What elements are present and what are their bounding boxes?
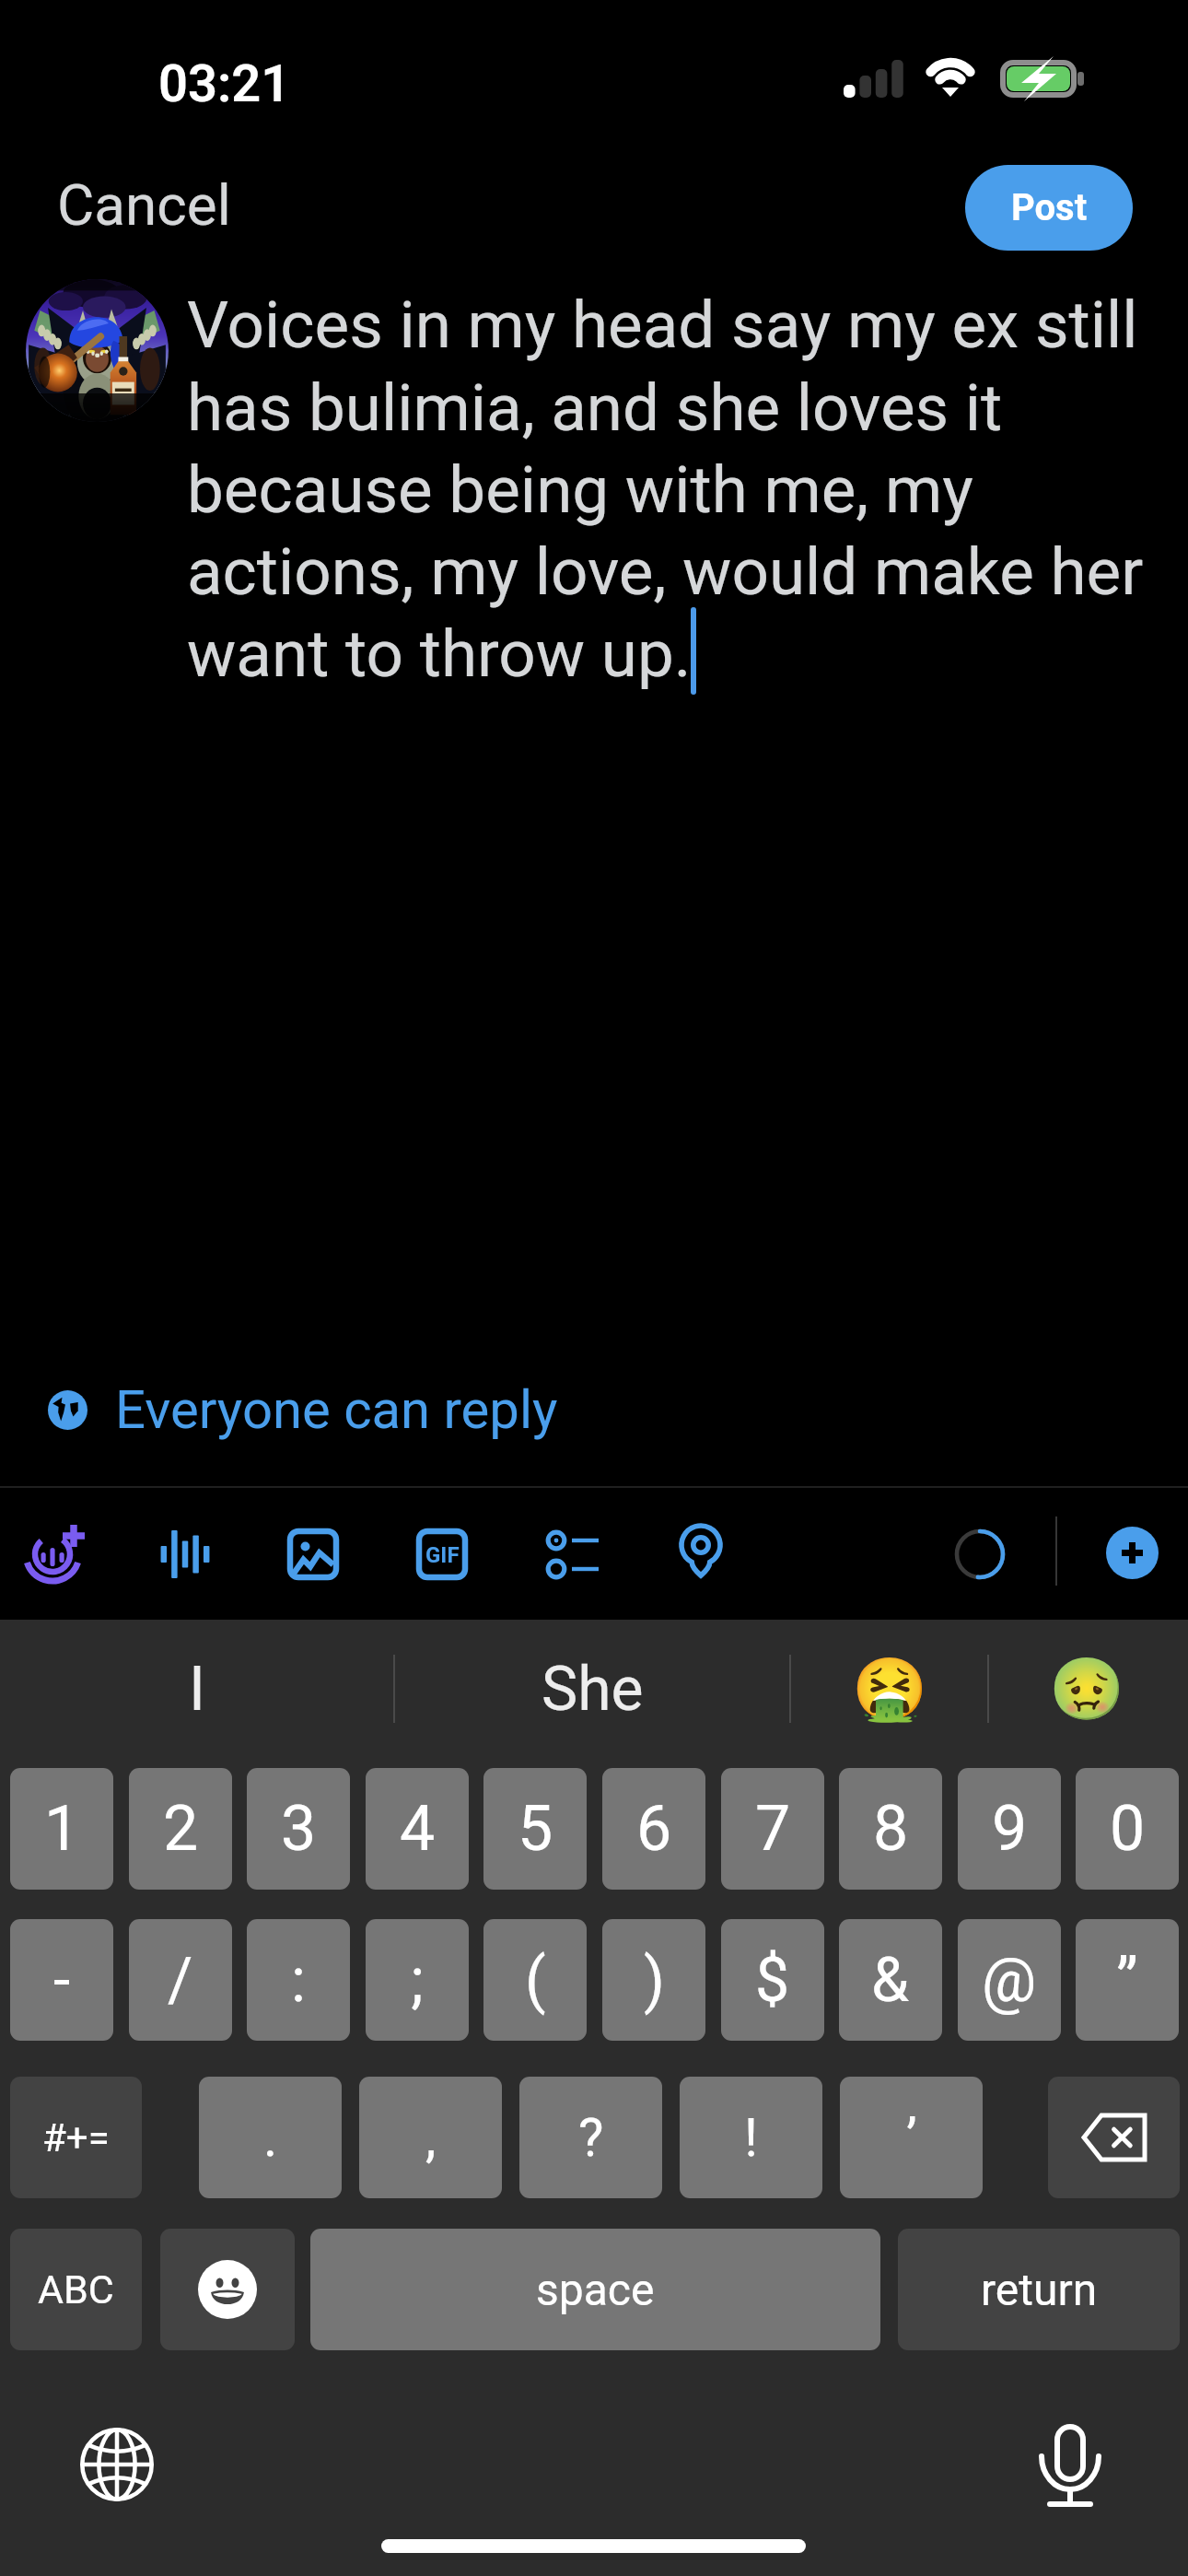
button[interactable]: Post [965,165,1133,251]
button[interactable]: ; [366,1919,469,2041]
button[interactable]: ) [602,1919,705,2041]
button[interactable]: 8 [839,1768,942,1890]
staticText: ” [1116,1945,1138,2016]
staticText: 8 [873,1792,909,1866]
staticText: space [536,2264,655,2315]
staticText: ! [744,2106,758,2169]
staticText: 0 [1110,1792,1146,1866]
button[interactable]: ” [1076,1919,1179,2041]
button[interactable]: & [839,1919,942,2041]
button[interactable]: Dictation [996,2394,1144,2541]
button[interactable]: #+= [10,2077,142,2198]
staticText: 5 [518,1792,553,1866]
staticText: ( [525,1945,546,2016]
staticText: 🤮 [852,1654,928,1725]
button[interactable]: / [129,1919,232,2041]
staticText: Post [1011,186,1088,229]
button[interactable]: GIF [396,1488,488,1620]
staticText: return [981,2264,1098,2315]
button[interactable]: Vomiting face emoji [791,1620,988,1758]
button[interactable]: 1 [10,1768,113,1890]
button[interactable]: : [247,1919,350,2041]
button[interactable]: ’ [840,2077,983,2198]
button[interactable]: ( [483,1919,587,2041]
button[interactable]: Profile picture [26,279,169,422]
staticText: 2 [163,1792,199,1866]
staticText: & [871,1945,910,2016]
button[interactable] [1048,2077,1180,2198]
button[interactable]: I [0,1620,394,1758]
staticText: ; [411,1945,424,2016]
button[interactable]: ? [519,2077,662,2198]
staticText: Cancel [57,171,231,239]
button[interactable]: 3 [247,1768,350,1890]
button[interactable]: Next keyboard [43,2391,191,2538]
staticText: Voices in my head say my ex still has bu… [187,287,1177,692]
staticText: ’ [906,2106,917,2169]
staticText: I [189,1654,205,1725]
button[interactable]: space [310,2229,880,2350]
button[interactable]: Nauseated face emoji [988,1620,1185,1758]
button[interactable]: Character count [934,1488,1026,1620]
staticText: @ [982,1945,1037,2016]
button[interactable]: Everyone can reply [0,1349,558,1470]
staticText: , [425,2106,437,2169]
button[interactable]: Cancel [37,157,251,253]
staticText: ? [578,2106,604,2169]
staticText: 03:21 [158,53,291,114]
button[interactable] [160,2229,295,2350]
button[interactable]: ! [680,2077,822,2198]
staticText: She [542,1654,644,1725]
button[interactable]: @ [958,1919,1061,2041]
staticText: $ [755,1945,790,2016]
button[interactable]: 7 [721,1768,824,1890]
button[interactable]: Voice [139,1488,231,1620]
staticText: 4 [400,1792,436,1866]
staticText: #+= [42,2115,110,2160]
button[interactable]: 0 [1076,1768,1179,1890]
button[interactable]: 9 [958,1768,1061,1890]
staticText: 1 [44,1792,80,1866]
button[interactable]: Add post [1106,1527,1159,1579]
button[interactable]: ABC [10,2229,142,2350]
staticText: GIF [425,1542,460,1568]
staticText: 9 [992,1792,1028,1866]
staticText: ) [644,1945,665,2016]
staticText: ABC [38,2266,114,2313]
button[interactable]: 4 [366,1768,469,1890]
button[interactable]: - [10,1919,113,2041]
staticText: Everyone can reply [115,1378,558,1441]
staticText: 🤢 [1049,1654,1125,1725]
button[interactable]: , [359,2077,502,2198]
staticText: : [291,1945,306,2016]
button[interactable]: 5 [483,1768,587,1890]
button[interactable]: She [394,1620,790,1758]
button[interactable]: Grok [11,1488,103,1620]
staticText: / [168,1945,193,2016]
button[interactable]: . [199,2077,342,2198]
staticText: 7 [755,1792,791,1866]
button[interactable]: Poll [526,1488,618,1620]
staticText: - [53,1945,71,2016]
staticText: . [263,2106,278,2169]
staticText: 3 [281,1792,317,1866]
button[interactable]: $ [721,1919,824,2041]
button[interactable]: Media [267,1488,359,1620]
button[interactable]: 2 [129,1768,232,1890]
staticText: 6 [636,1792,672,1866]
button[interactable]: return [898,2229,1180,2350]
button[interactable]: 6 [602,1768,705,1890]
button[interactable]: Location [655,1488,747,1620]
